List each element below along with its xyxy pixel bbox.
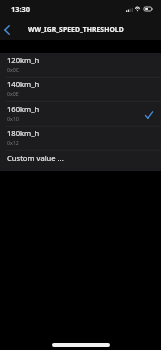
- other: Selected: [145, 111, 153, 119]
- staticText: 13:30: [11, 4, 30, 14]
- button[interactable]: Custom value ...: [0, 151, 161, 172]
- staticText: 0x12: [7, 139, 19, 146]
- staticText: 140km_h: [7, 79, 40, 89]
- button[interactable]: 140km_h: [0, 77, 161, 101]
- button[interactable]: 120km_h: [0, 53, 161, 77]
- staticText: 160km_h: [7, 104, 40, 114]
- staticText: 0x10: [7, 115, 19, 122]
- staticText: 0x0C: [7, 66, 20, 73]
- staticText: 180km_h: [7, 128, 40, 138]
- button[interactable]: Back: [0, 19, 14, 40]
- staticText: WW_IGR_SPEED_THRESHOLD: [28, 25, 124, 34]
- staticText: Custom value ...: [7, 153, 64, 163]
- staticText: 120km_h: [7, 55, 40, 65]
- button[interactable]: 180km_h: [0, 126, 161, 150]
- staticText: 0x0E: [7, 90, 19, 97]
- button[interactable]: 160km_h: [0, 102, 161, 126]
